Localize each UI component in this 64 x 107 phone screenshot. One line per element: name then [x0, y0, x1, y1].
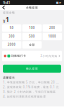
staticText: 到账银行卡 — [11, 54, 26, 58]
staticText: 50 — [10, 26, 14, 30]
staticText: ¥ — [3, 18, 5, 24]
button[interactable]: 300 — [2, 33, 21, 40]
button[interactable]: 2000 — [2, 41, 21, 48]
staticText: 余额提现 — [26, 6, 38, 9]
staticText: ▮▮ ▰ — [56, 1, 61, 4]
staticText: 1. 单笔提现限额 5 万元，单日限额 20 万元 — [3, 81, 61, 84]
staticText: 温馨提示 — [3, 76, 15, 79]
staticText: 提现金额 — [3, 11, 15, 14]
button[interactable]: 全部 — [22, 41, 42, 48]
button[interactable]: 200 — [43, 24, 62, 32]
button[interactable]: 返回 — [0, 5, 7, 10]
staticText: 确认提现 — [26, 67, 38, 70]
staticText: 2. 提现将收取 0.1% 手续费，最低 0.1 元 — [3, 85, 59, 89]
button[interactable]: 500 — [22, 33, 42, 40]
staticText: 全部 — [29, 43, 35, 46]
button[interactable]: 1000 — [43, 33, 62, 40]
staticText: 1000 — [48, 35, 56, 38]
staticText: 100 — [29, 26, 35, 30]
staticText: 300 — [9, 35, 15, 38]
staticText: 9:41 — [3, 0, 10, 5]
staticText: 200 — [49, 26, 55, 30]
staticText: 1 — [5, 15, 9, 24]
staticText: 2小时内到账 — [41, 54, 58, 58]
staticText: 3. 预计 2 小时内到账，节假日可能顺延 — [3, 90, 56, 94]
button[interactable]: 50 — [2, 24, 21, 32]
button[interactable]: 到账银行卡 — [0, 51, 64, 61]
button[interactable]: 100 — [22, 24, 42, 32]
button[interactable]: 确认提现 — [0, 65, 64, 73]
staticText: 500 — [29, 35, 35, 38]
staticText: 4. 如有疑问请联系在线客服处理 — [3, 95, 46, 98]
staticText: 2000 — [8, 43, 16, 47]
